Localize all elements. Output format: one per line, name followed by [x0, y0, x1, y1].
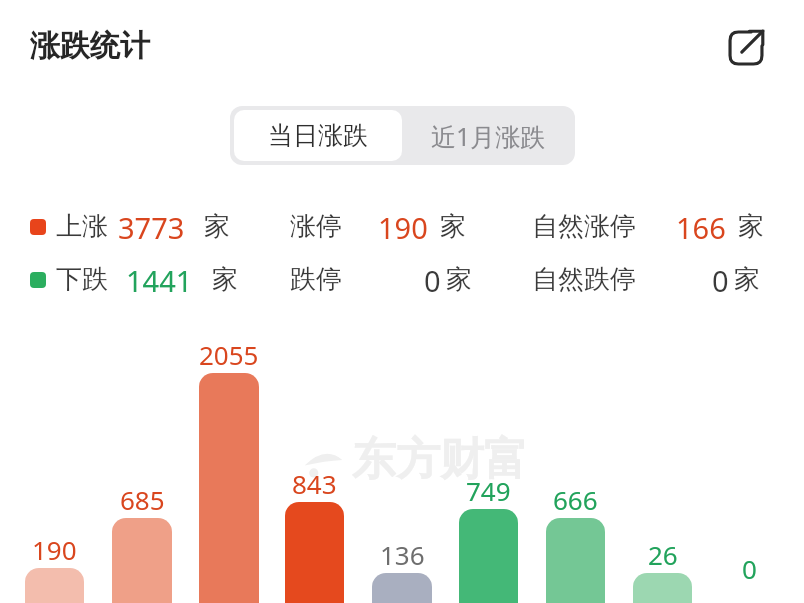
- staticText: 上涨: [56, 210, 108, 243]
- staticText: 2055: [199, 337, 259, 372]
- button[interactable]: [25, 568, 84, 603]
- staticText: 东方财富: [352, 432, 528, 487]
- staticText: 136: [380, 537, 425, 572]
- staticText: 当日涨跌: [268, 120, 368, 151]
- button[interactable]: [112, 518, 172, 603]
- button[interactable]: [633, 573, 692, 603]
- staticText: 843: [292, 466, 337, 501]
- staticText: 190: [32, 532, 77, 567]
- button[interactable]: [546, 518, 605, 603]
- staticText: 近1月涨跌: [431, 119, 546, 153]
- staticText: 家: [446, 263, 472, 296]
- button[interactable]: 当日涨跌: [234, 110, 402, 161]
- button[interactable]: [372, 573, 432, 603]
- button[interactable]: [459, 509, 518, 603]
- staticText: 涨停: [290, 210, 342, 243]
- staticText: 0: [424, 261, 441, 300]
- staticText: 666: [553, 482, 598, 517]
- staticText: 家: [212, 263, 238, 296]
- staticText: 自然跌停: [532, 263, 636, 296]
- staticText: 166: [676, 208, 726, 247]
- staticText: 家: [734, 263, 760, 296]
- staticText: 0: [712, 261, 729, 300]
- staticText: 0: [742, 551, 757, 586]
- staticText: 190: [378, 208, 428, 247]
- staticText: 家: [738, 210, 764, 243]
- staticText: 下跌: [56, 263, 108, 296]
- staticText: 跌停: [290, 263, 342, 296]
- staticText: 685: [120, 482, 165, 517]
- button[interactable]: [199, 373, 259, 603]
- staticText: 涨跌统计: [30, 27, 150, 65]
- button[interactable]: [285, 502, 344, 603]
- staticText: 26: [648, 537, 678, 572]
- button[interactable]: 近1月涨跌: [406, 110, 571, 161]
- staticText: 3773: [118, 208, 185, 247]
- button[interactable]: Share: [720, 22, 772, 74]
- staticText: 1441: [126, 261, 193, 300]
- staticText: 自然涨停: [532, 210, 636, 243]
- staticText: 749: [466, 473, 511, 508]
- staticText: 家: [204, 210, 230, 243]
- staticText: 家: [440, 210, 466, 243]
